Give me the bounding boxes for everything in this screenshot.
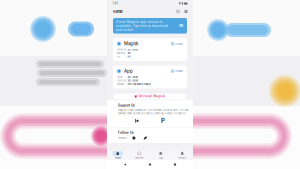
staticText: 26.1 (26100) [127,79,138,82]
button[interactable]: GitHub [129,135,138,140]
staticText: Magisk is and always will be free and op… [118,108,188,112]
staticText: Support Us [118,103,135,107]
staticText: Ramdisk [117,52,125,54]
button[interactable]: Uninstall Magisk [113,93,187,100]
button[interactable]: Patreon [130,118,144,124]
staticText: however show us that you care by sending… [118,112,186,115]
button[interactable]: Superuser [128,150,150,160]
staticText: Home [115,156,121,159]
button[interactable]: PayPal [156,118,170,124]
button[interactable]: Install [170,69,184,73]
staticText: P [161,117,165,124]
staticText: Install [175,42,183,45]
staticText: and install. [116,28,134,32]
staticText: Magisk [124,41,138,46]
button[interactable]: Back [118,160,132,169]
button[interactable]: Search [174,7,182,15]
button[interactable]: Logs [150,150,171,160]
staticText: Modules [178,156,186,159]
button[interactable]: Recents [168,160,182,169]
staticText: Developers [118,137,127,139]
staticText: com.topjohnwu.magisk [127,83,150,85]
staticText: 26.1 (26100) [127,48,138,51]
button[interactable]: Home [143,160,157,169]
button[interactable]: Modules [171,150,193,160]
button[interactable]: A new Magisk app version is [113,18,187,34]
staticText: OK [179,24,183,28]
button[interactable]: Install [170,42,184,46]
staticText: Installed [117,79,126,82]
staticText: Installed [117,48,126,51]
staticText: available. Tap here to download [116,24,168,28]
staticText: Logs [159,156,163,159]
button[interactable]: Twitter [141,135,150,140]
staticText: Superuser [135,156,144,159]
staticText: 1:47 [112,2,118,5]
button[interactable]: Settings [182,7,190,15]
staticText: No [127,55,130,58]
staticText: App [124,68,133,74]
staticText: Package [117,83,124,85]
staticText: 26.1 (26100) [127,76,138,78]
staticText: A new Magisk app version is [116,20,163,24]
staticText: A/B [117,55,120,58]
staticText: Home [112,9,122,14]
staticText: Uninstall Magisk [138,94,165,98]
staticText: Yes [127,52,130,54]
button[interactable]: Home [107,150,128,160]
staticText: Latest [117,76,123,78]
staticText: Install [175,70,183,73]
staticText: Follow Us [118,131,134,134]
